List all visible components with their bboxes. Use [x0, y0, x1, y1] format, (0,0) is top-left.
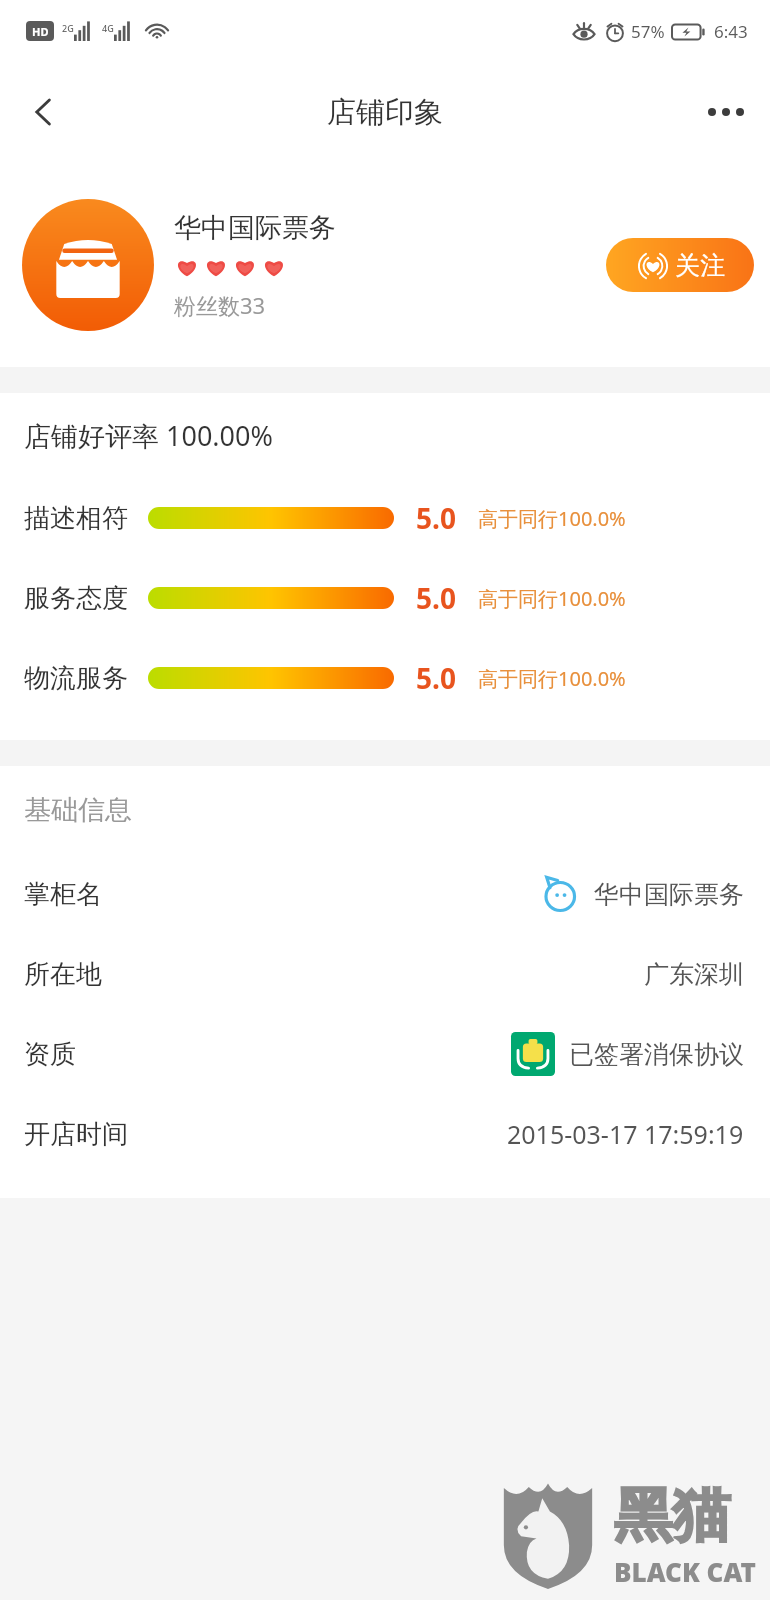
staticText: HD — [32, 24, 49, 39]
staticText: 57% — [631, 20, 665, 43]
staticText: 已签署消保协议 — [569, 1039, 744, 1070]
staticText: 2015-03-17 17:59:19 — [507, 1117, 744, 1151]
staticText: 高于同行100.0% — [478, 665, 626, 692]
staticText: 基础信息 — [24, 793, 132, 827]
staticText: 开店时间 — [24, 1118, 128, 1151]
staticText: 2G — [62, 22, 74, 34]
staticText: 所在地 — [24, 958, 102, 991]
staticText: BLACK CAT — [614, 1554, 756, 1589]
staticText: 店铺好评率 100.00% — [24, 417, 273, 454]
staticText: 华中国际票务 — [174, 211, 336, 245]
button[interactable]: 关注 — [606, 238, 754, 292]
staticText: 5.0 — [416, 579, 456, 617]
staticText: 关注 — [675, 250, 725, 281]
staticText: 5.0 — [416, 499, 456, 537]
button[interactable]: 开店时间 — [24, 1094, 744, 1174]
staticText: 4G — [102, 22, 114, 34]
staticText: 5.0 — [416, 659, 456, 697]
staticText: 黑猫 — [614, 1479, 730, 1552]
staticText: 描述相符 — [24, 502, 128, 535]
staticText: 掌柜名 — [24, 878, 102, 911]
button[interactable]: 物流服务 — [24, 638, 770, 718]
staticText: 资质 — [24, 1038, 76, 1071]
staticText: 服务态度 — [24, 582, 128, 615]
button[interactable]: More options — [694, 80, 758, 144]
staticText: 物流服务 — [24, 662, 128, 695]
staticText: 6:43 — [714, 20, 748, 43]
staticText: 华中国际票务 — [594, 879, 744, 910]
button[interactable]: 资质 — [24, 1014, 744, 1094]
button[interactable]: 掌柜名 — [24, 854, 744, 934]
staticText: 高于同行100.0% — [478, 585, 626, 612]
button[interactable]: 服务态度 — [24, 558, 770, 638]
staticText: 店铺印象 — [327, 94, 443, 131]
button[interactable]: Back — [12, 80, 76, 144]
button[interactable]: 描述相符 — [24, 478, 770, 558]
button[interactable]: 所在地 — [24, 934, 744, 1014]
staticText: 粉丝数33 — [174, 290, 266, 320]
staticText: 高于同行100.0% — [478, 505, 626, 532]
staticText: 广东深圳 — [644, 959, 744, 990]
